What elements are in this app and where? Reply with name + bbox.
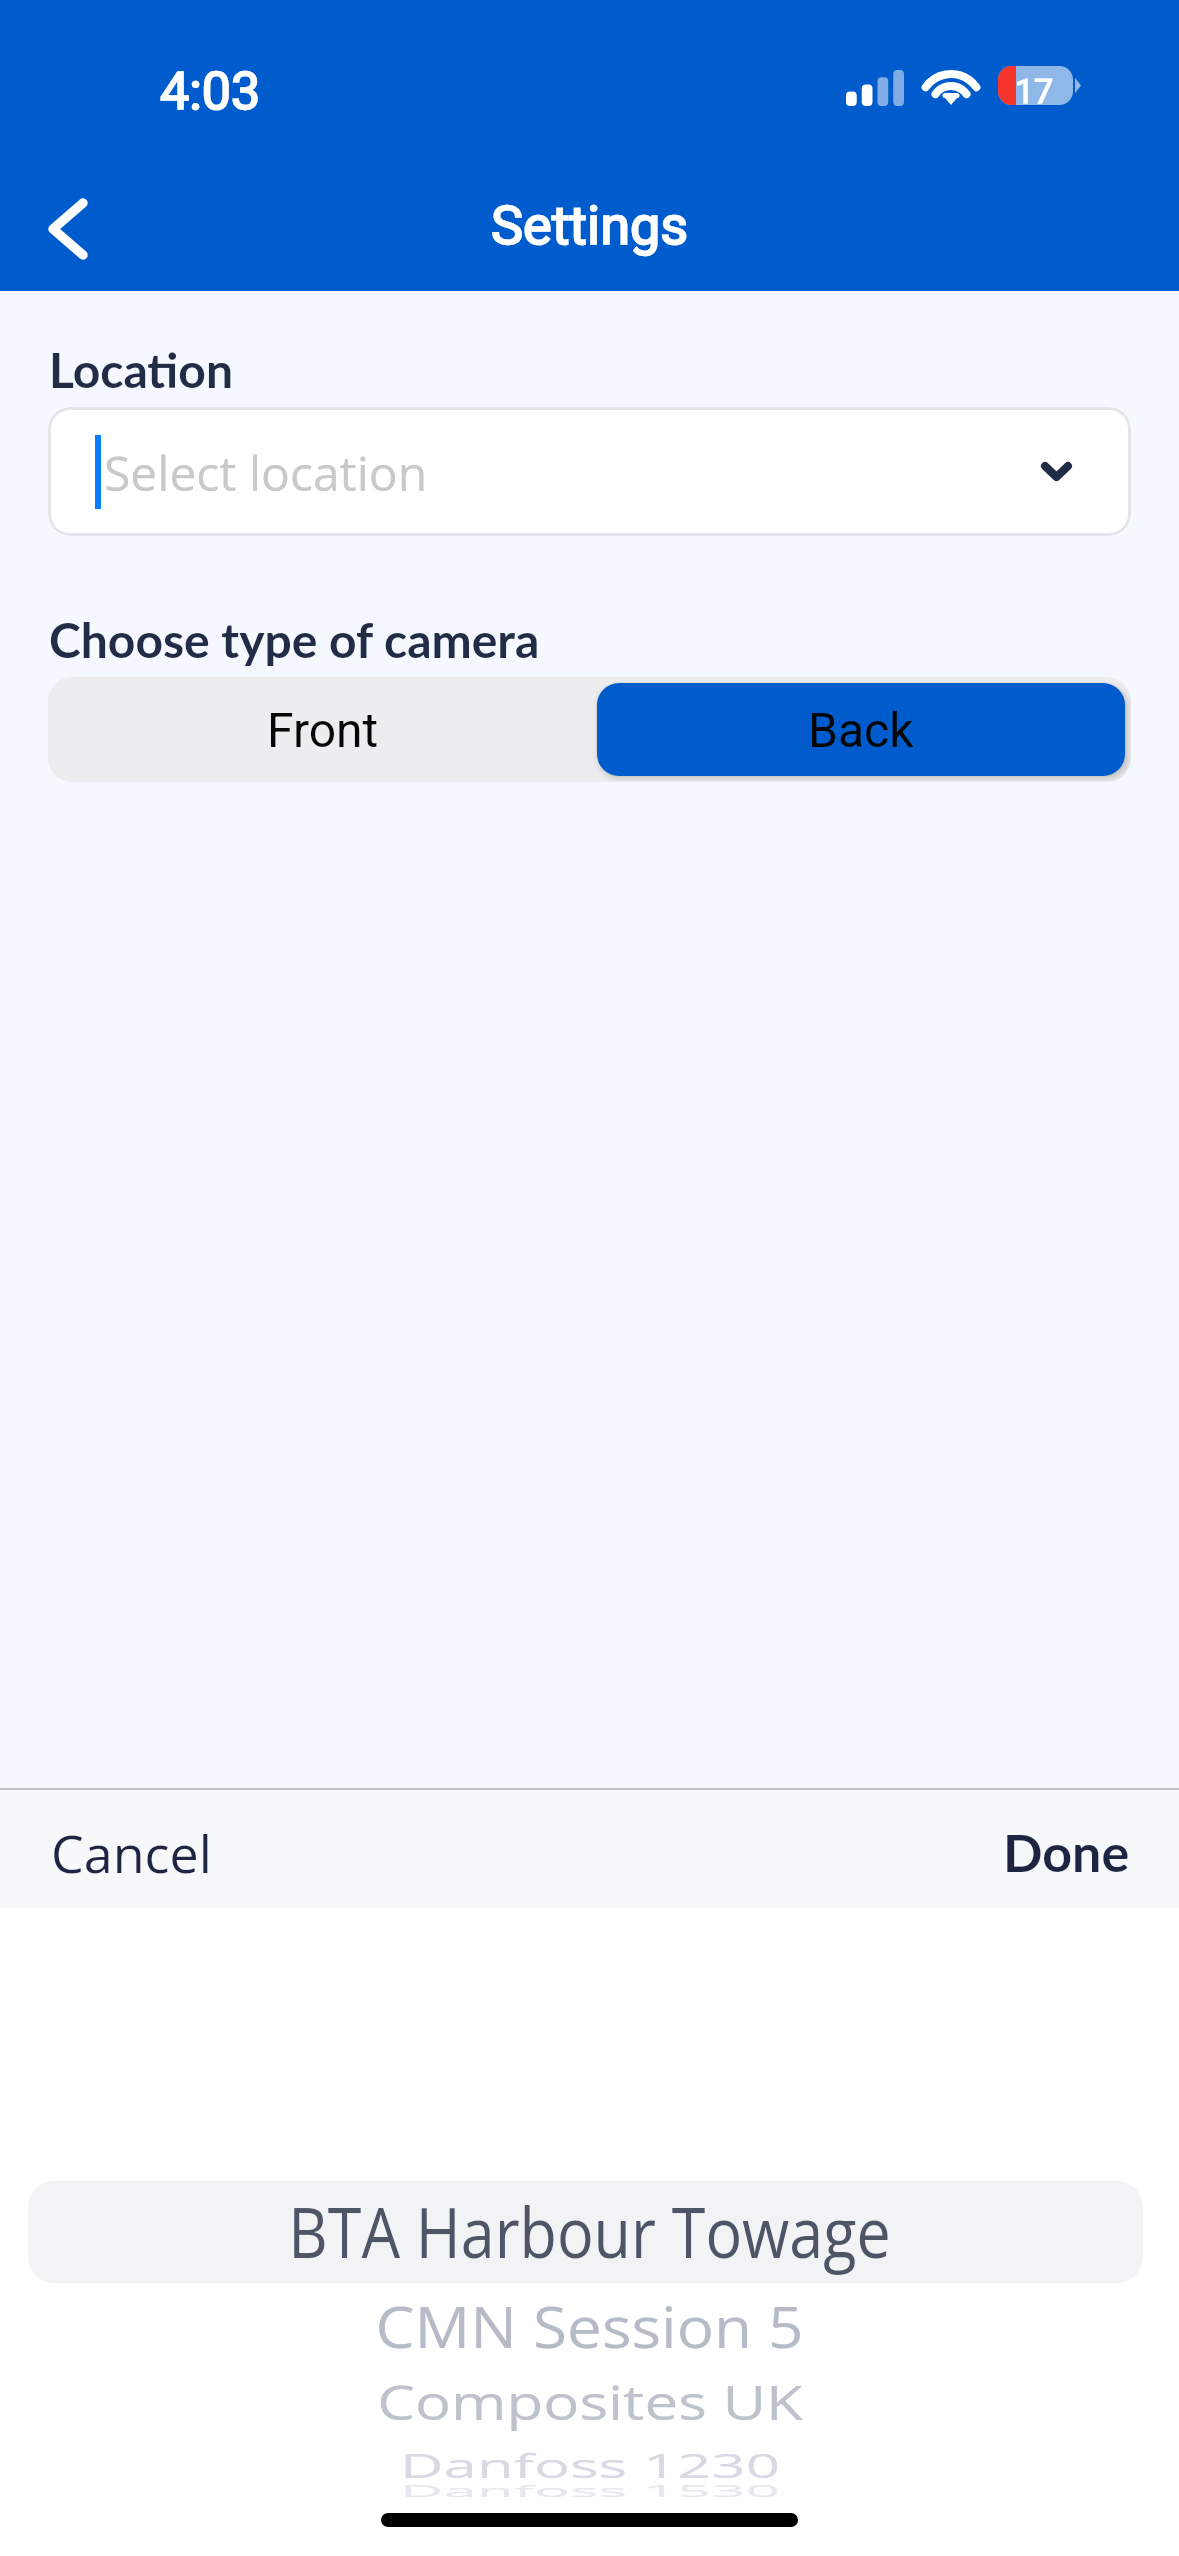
staticText: Cancel — [51, 1817, 212, 1888]
button[interactable]: Front — [48, 677, 598, 782]
button[interactable]: Danfoss 1530 — [0, 2449, 1179, 2533]
staticText: Choose type of camera — [49, 611, 540, 669]
staticText: Done — [1003, 1821, 1130, 1883]
staticText: Back — [808, 702, 914, 758]
staticText: Location — [49, 341, 233, 399]
button[interactable]: Back — [8, 169, 128, 289]
button[interactable]: CMN Session 5 — [0, 2282, 1179, 2369]
staticText: CMN Session 5 — [375, 2287, 804, 2365]
staticText: Front — [267, 702, 379, 758]
staticText: Danfoss 1230 — [400, 2442, 780, 2487]
button[interactable]: BTA Harbour Towage — [0, 2189, 1179, 2274]
staticText: Settings — [491, 194, 689, 257]
staticText: 4:03 — [160, 61, 261, 122]
button[interactable]: Done — [1003, 1821, 1130, 1883]
staticText: Composites UK — [377, 2370, 803, 2434]
staticText: Select location — [104, 440, 428, 505]
button[interactable]: Select location — [48, 407, 1131, 536]
button[interactable]: Back — [597, 683, 1125, 776]
button[interactable]: Danfoss 1230 — [0, 2423, 1179, 2507]
staticText: Danfoss 1530 — [400, 2479, 780, 2502]
button[interactable]: Cancel — [51, 1817, 212, 1888]
button[interactable]: Composites UK — [0, 2360, 1179, 2444]
staticText: 17 — [1015, 71, 1054, 110]
staticText: BTA Harbour Towage — [288, 2184, 891, 2279]
